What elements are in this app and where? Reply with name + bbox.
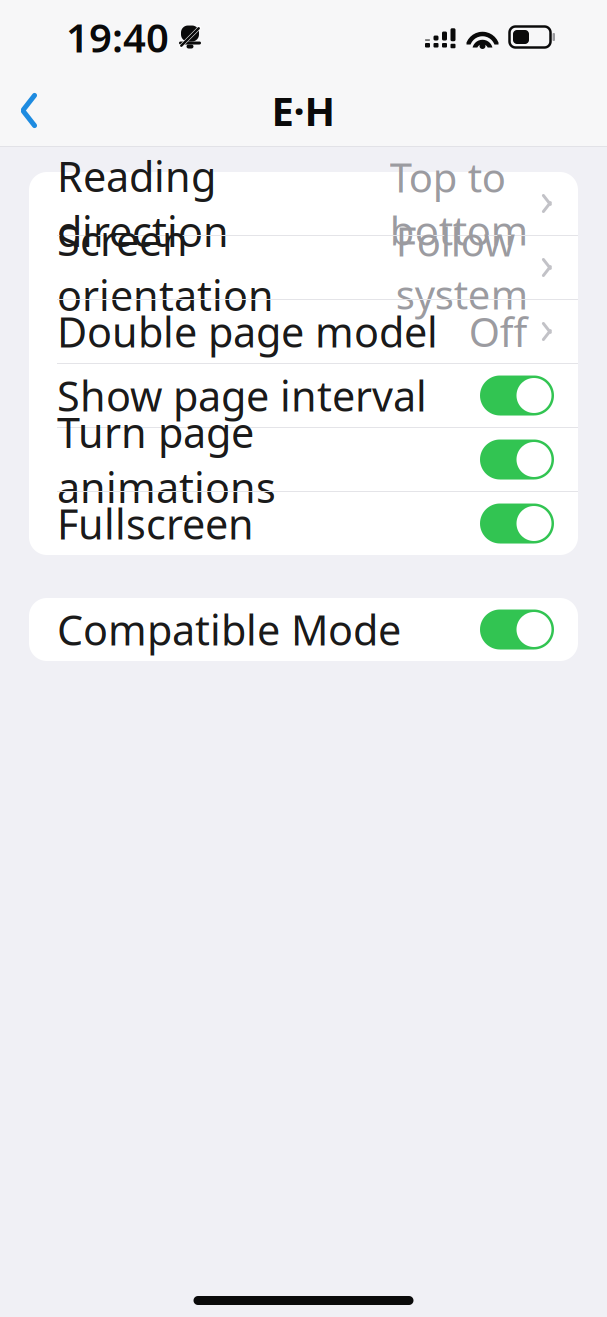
staticText: Top to bottom: [390, 150, 528, 257]
staticText: Double page model: [57, 304, 438, 359]
button[interactable]: Double page model: [29, 300, 578, 363]
button[interactable]: Turn page animations: [29, 428, 578, 491]
button[interactable]: Screen orientation: [29, 236, 578, 299]
staticText: Turn page animations: [57, 405, 276, 514]
button[interactable]: Back: [0, 78, 62, 142]
staticText: Fullscreen: [57, 496, 254, 551]
staticText: Compatible Mode: [57, 602, 401, 657]
button[interactable]: Fullscreen: [29, 492, 578, 555]
staticText: Reading direction: [57, 149, 229, 258]
staticText: Follow system: [396, 214, 528, 321]
button[interactable]: Show page interval: [29, 364, 578, 427]
staticText: 19:40: [66, 10, 169, 63]
staticText: Off: [469, 305, 528, 358]
staticText: Screen orientation: [57, 213, 274, 322]
button[interactable]: Compatible Mode: [29, 598, 578, 661]
staticText: E·H: [271, 84, 335, 137]
button[interactable]: Reading direction: [29, 172, 578, 235]
staticText: Show page interval: [57, 368, 427, 423]
